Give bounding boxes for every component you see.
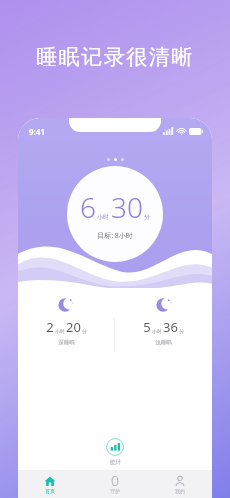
staticText: 首页: [45, 488, 55, 494]
staticText: 30: [111, 188, 143, 226]
staticText: 分: [179, 328, 184, 334]
staticText: 6: [80, 188, 96, 226]
staticText: 目标: 8小时: [97, 231, 133, 241]
staticText: 2: [46, 318, 54, 336]
button[interactable]: 2: [18, 296, 114, 346]
button[interactable]: 6: [67, 166, 163, 262]
staticText: 小时: [55, 328, 65, 334]
staticText: 浅睡眠: [155, 339, 172, 346]
staticText: 分: [82, 328, 87, 334]
button[interactable]: 5: [115, 296, 212, 346]
staticText: 守护: [110, 488, 120, 494]
staticText: 5: [143, 318, 151, 336]
button[interactable]: 我的: [147, 475, 212, 494]
staticText: 9:41: [29, 126, 45, 137]
staticText: 小时: [97, 213, 109, 221]
staticText: 统计: [110, 459, 121, 466]
button[interactable]: 首页: [18, 475, 82, 494]
staticText: 36: [163, 318, 178, 336]
staticText: 20: [66, 318, 81, 336]
staticText: 分: [144, 213, 150, 221]
staticText: 我的: [175, 488, 185, 494]
button[interactable]: 守护: [82, 475, 147, 494]
staticText: 深睡眠: [58, 339, 75, 346]
staticText: 小时: [152, 328, 162, 334]
staticText: 睡眠记录很清晰: [36, 44, 194, 70]
button[interactable]: 统计: [105, 437, 125, 466]
